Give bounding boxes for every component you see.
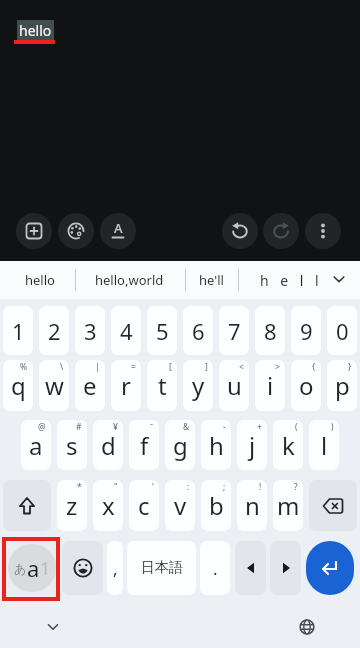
staticText: : [187,481,190,493]
button[interactable]: r [111,360,141,411]
staticText: h e l l [260,271,323,290]
staticText: s [66,429,78,462]
button[interactable]: j [237,420,267,470]
button[interactable]: h [201,420,231,470]
staticText: hello [19,21,52,40]
staticText: hello [25,271,55,289]
staticText: j [249,429,256,462]
button[interactable]: 日本語 [127,541,196,595]
staticText: y [192,369,205,402]
staticText: # [76,421,82,433]
staticText: { [312,361,316,373]
button[interactable]: y [183,360,213,411]
button[interactable]: v [165,480,195,531]
staticText: h [209,429,224,462]
staticText: q [11,369,26,402]
button[interactable]: hello,world [86,261,172,299]
button[interactable]: c [129,480,159,531]
staticText: < [239,361,244,373]
button[interactable]: x [93,480,123,531]
button[interactable]: f [129,420,159,470]
staticText: ; [223,481,226,493]
staticText: } [348,361,352,373]
staticText: a [27,553,40,583]
staticText: f [140,429,149,462]
button[interactable]: u [219,360,249,411]
staticText: x [102,489,115,522]
button[interactable]: w [39,360,69,411]
button[interactable]: e [75,360,105,411]
button[interactable] [270,541,301,595]
staticText: A [114,219,123,237]
button[interactable]: A [100,213,136,249]
staticText: u [227,369,242,402]
staticText: . [213,557,218,580]
button[interactable]: . [200,541,230,595]
button[interactable]: z [57,480,87,531]
button[interactable]: 9 [291,306,321,355]
button[interactable] [3,480,51,531]
button[interactable]: 1 [3,306,33,355]
button[interactable]: m [273,480,303,531]
staticText: ) [331,421,334,433]
staticText: & [183,421,190,433]
button[interactable]: g [165,420,195,470]
button[interactable]: 0 [327,306,357,355]
staticText: 4 [120,316,133,346]
staticText: g [173,429,188,462]
button[interactable]: 7 [219,306,249,355]
button[interactable] [235,541,266,595]
staticText: n [245,489,260,522]
staticText: * [77,481,82,493]
staticText: hello,world [95,271,164,289]
button[interactable] [294,614,320,640]
button[interactable]: he'll [196,261,226,299]
button[interactable]: 3 [75,306,105,355]
button[interactable]: 2 [39,306,69,355]
button[interactable]: k [273,420,303,470]
staticText: 1 [40,556,51,581]
button[interactable] [16,213,52,249]
staticText: ( [295,421,298,433]
staticText: i [267,369,274,402]
button[interactable]: 5 [147,306,177,355]
button[interactable]: hello [22,261,58,299]
staticText: w [45,369,64,402]
staticText: @ [38,421,46,433]
staticText: 7 [228,316,241,346]
button[interactable] [309,480,357,531]
staticText: 5 [156,316,169,346]
staticText: , [113,557,118,580]
button[interactable] [40,614,66,640]
staticText: | [95,361,100,373]
button[interactable]: , [107,541,123,595]
button[interactable] [305,213,341,249]
button[interactable]: p [327,360,357,411]
staticText: p [335,369,350,402]
button[interactable] [263,213,299,249]
button[interactable]: s [57,420,87,470]
staticText: c [138,489,150,522]
button[interactable]: a [21,420,51,470]
button[interactable]: n [237,480,267,531]
staticText: t [158,369,167,402]
button[interactable]: o [291,360,321,411]
button[interactable]: t [147,360,177,411]
staticText: 3 [84,316,97,346]
button[interactable]: h e l l [252,261,330,299]
button[interactable] [328,268,350,290]
button[interactable] [62,541,103,595]
button[interactable]: d [93,420,123,470]
staticText: 日本語 [141,559,183,577]
button[interactable]: あ [7,541,57,595]
button[interactable]: q [3,360,33,411]
button[interactable]: 6 [183,306,213,355]
button[interactable] [306,541,354,595]
button[interactable] [222,213,258,249]
button[interactable]: i [255,360,285,411]
button[interactable]: 4 [111,306,141,355]
button[interactable]: l [309,420,339,470]
button[interactable] [58,213,94,249]
button[interactable]: b [201,480,231,531]
button[interactable]: 8 [255,306,285,355]
